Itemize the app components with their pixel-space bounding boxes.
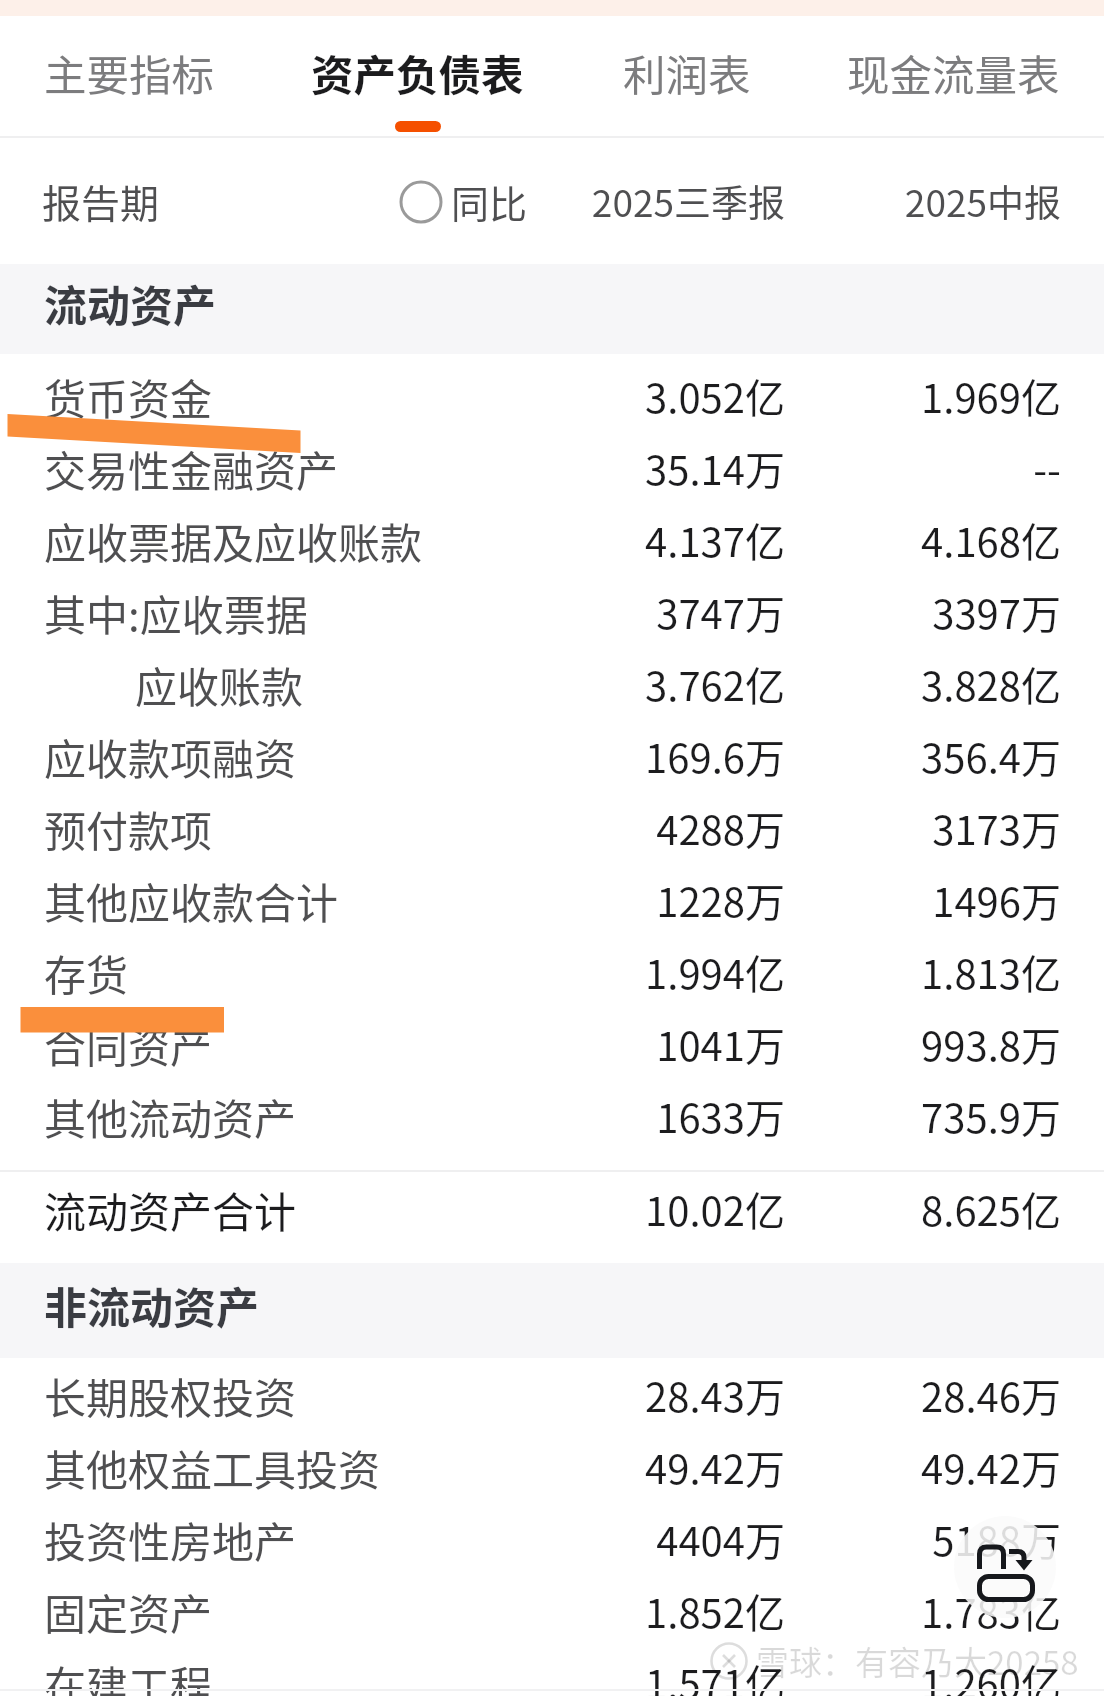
staticText: 3747万 — [0, 583, 785, 641]
staticText: 报告期 — [42, 173, 160, 229]
staticText: 3.762亿 — [0, 655, 785, 713]
staticText: 其他权益工具投资 — [44, 1437, 381, 1498]
staticText: 在建工程 — [44, 1653, 213, 1696]
button[interactable]: 存货 — [0, 936, 1104, 1008]
staticText: 1041万 — [0, 1015, 785, 1073]
staticText: 同比 — [451, 174, 528, 229]
staticText: 356.4万 — [0, 727, 1061, 785]
button[interactable]: 利润表 — [556, 13, 818, 133]
staticText: 4404万 — [0, 1510, 785, 1568]
staticText: 固定资产 — [44, 1581, 213, 1642]
staticText: 10.02亿 — [0, 1180, 785, 1238]
staticText: 49.42万 — [0, 1438, 785, 1496]
staticText: 合同资产 — [44, 1014, 213, 1075]
button[interactable]: 现金流量表 — [822, 13, 1084, 133]
button[interactable]: 投资性房地产 — [0, 1503, 1104, 1575]
button[interactable]: 其他流动资产 — [0, 1080, 1104, 1152]
staticText: 非流动资产 — [44, 1274, 259, 1336]
button[interactable]: 资产负债表 — [285, 13, 549, 133]
button[interactable]: 其他权益工具投资 — [0, 1431, 1104, 1503]
staticText: 4.168亿 — [0, 511, 1061, 569]
button[interactable]: 长期股权投资 — [0, 1359, 1104, 1431]
staticText: 1496万 — [0, 871, 1061, 929]
staticText: 1.813亿 — [0, 943, 1061, 1001]
staticText: 资产负债表 — [311, 42, 524, 104]
staticText: 投资性房地产 — [44, 1509, 297, 1570]
button[interactable]: 应收账款 — [0, 648, 1104, 720]
staticText: 1633万 — [0, 1087, 785, 1145]
button[interactable]: 应收票据及应收账款 — [0, 504, 1104, 576]
staticText: 1228万 — [0, 871, 785, 929]
staticText: 其他应收款合计 — [44, 870, 339, 931]
staticText: 3.828亿 — [0, 655, 1061, 713]
staticText: 长期股权投资 — [44, 1365, 297, 1426]
staticText: 应收账款 — [135, 654, 304, 715]
staticText: 169.6万 — [0, 727, 785, 785]
staticText: 8.625亿 — [0, 1180, 1061, 1238]
staticText: 28.46万 — [0, 1366, 1061, 1424]
staticText: 4288万 — [0, 799, 785, 857]
staticText: 利润表 — [623, 42, 751, 104]
staticText: 其他流动资产 — [44, 1086, 297, 1147]
staticText: 28.43万 — [0, 1366, 785, 1424]
staticText: 1.852亿 — [0, 1582, 785, 1640]
button[interactable]: 主要指标 — [0, 13, 258, 133]
staticText: 3397万 — [0, 583, 1061, 641]
staticText: 735.9万 — [0, 1087, 1061, 1145]
staticText: 交易性金融资产 — [44, 438, 339, 499]
button[interactable]: 同比 — [399, 174, 528, 229]
staticText: 993.8万 — [0, 1015, 1061, 1073]
button[interactable]: 应收款项融资 — [0, 720, 1104, 792]
button[interactable]: 预付款项 — [0, 792, 1104, 864]
staticText: 1.994亿 — [0, 943, 785, 1001]
staticText: 其中:应收票据 — [44, 582, 308, 643]
staticText: 现金流量表 — [847, 42, 1060, 104]
staticText: 存货 — [44, 942, 129, 1003]
staticText: 3173万 — [0, 799, 1061, 857]
staticText: 1.571亿 — [0, 1653, 785, 1696]
staticText: 3.052亿 — [0, 367, 785, 425]
button[interactable]: 合同资产 — [0, 1008, 1104, 1080]
staticText: 应收款项融资 — [44, 726, 297, 787]
staticText: 1.969亿 — [0, 367, 1061, 425]
staticText: 预付款项 — [44, 798, 213, 859]
staticText: 应收票据及应收账款 — [44, 510, 423, 571]
staticText: 5188万 — [0, 1510, 1061, 1568]
staticText: 2025三季报 — [0, 174, 785, 228]
staticText: -- — [0, 439, 1061, 497]
button[interactable]: 其中:应收票据 — [0, 576, 1104, 648]
button[interactable]: 交易性金融资产 — [0, 432, 1104, 504]
staticText: 流动资产合计 — [44, 1179, 297, 1240]
button[interactable]: Rotate screen — [954, 1516, 1056, 1618]
staticText: 4.137亿 — [0, 511, 785, 569]
button[interactable]: 固定资产 — [0, 1575, 1104, 1647]
staticText: 35.14万 — [0, 439, 785, 497]
staticText: 主要指标 — [44, 42, 215, 104]
button[interactable]: 在建工程 — [0, 1647, 1104, 1696]
staticText: 2025中报 — [0, 174, 1061, 228]
staticText: 49.42万 — [0, 1438, 1061, 1496]
staticText: 1.260亿 — [0, 1653, 1061, 1696]
button[interactable]: 其他应收款合计 — [0, 864, 1104, 936]
staticText: 流动资产 — [44, 272, 216, 334]
button[interactable]: 货币资金 — [0, 360, 1104, 432]
staticText: 雪球：有容乃大20258 — [756, 1637, 1079, 1685]
staticText: 1.783亿 — [0, 1582, 1061, 1640]
staticText: 货币资金 — [44, 366, 213, 427]
button[interactable]: 流动资产合计 — [0, 1172, 1104, 1246]
